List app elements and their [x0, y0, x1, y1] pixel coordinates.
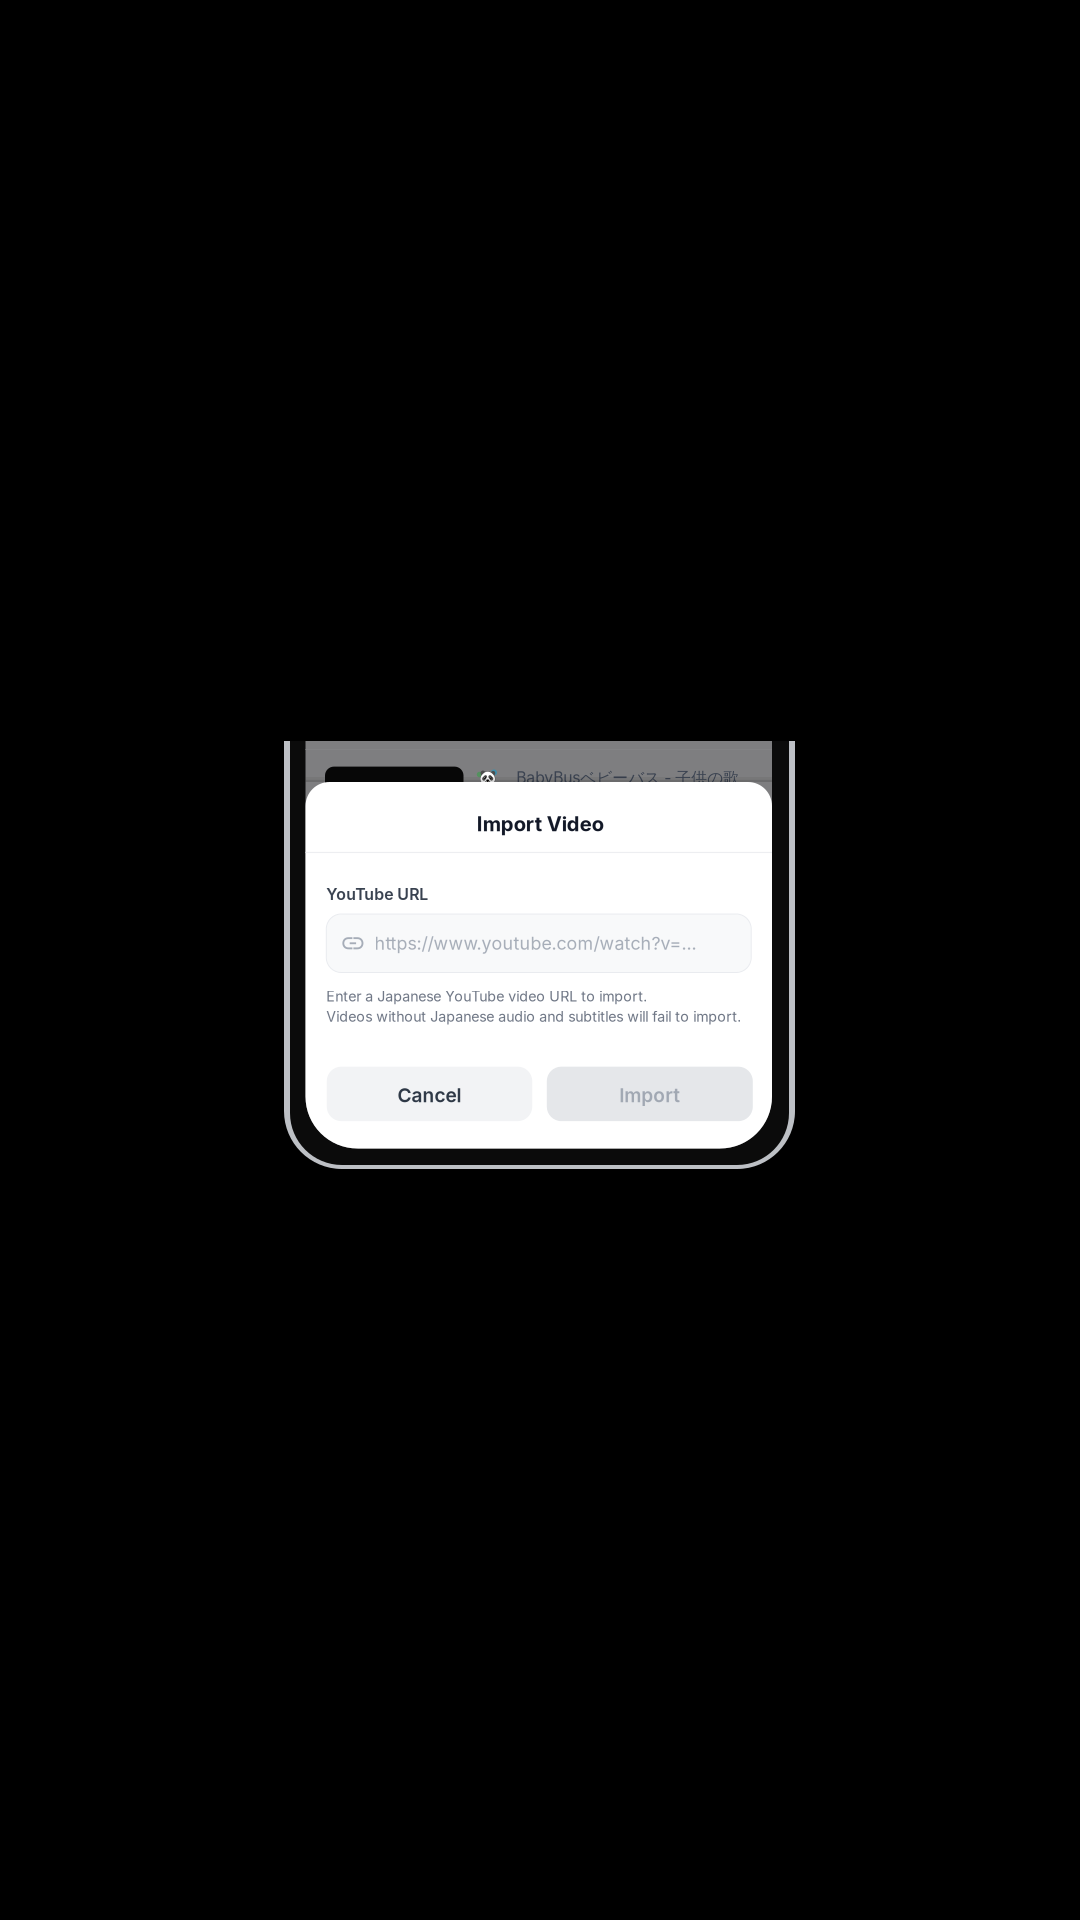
button[interactable]: Import — [547, 1067, 753, 1121]
staticText: https://www.youtube.com/watch?v=... — [374, 932, 696, 954]
staticText: 🐼 — [478, 769, 495, 785]
staticText: Import — [619, 1084, 680, 1107]
staticText: Videos without Japanese audio and subtit… — [326, 1008, 741, 1025]
button[interactable]: BabyBusベビーバス - 子供の歌 — [516, 767, 739, 789]
staticText: YouTube URL — [326, 885, 428, 904]
staticText: BabyBusベビーバス - 子供の歌 — [516, 768, 739, 788]
staticText: Import Video — [477, 812, 604, 836]
staticText: Cancel — [397, 1084, 461, 1107]
staticText: Enter a Japanese YouTube video URL to im… — [326, 988, 647, 1005]
button[interactable]: Cancel — [327, 1067, 532, 1121]
